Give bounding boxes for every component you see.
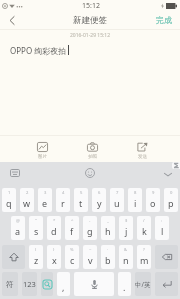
staticText: i (134, 197, 137, 209)
staticText: r (61, 197, 65, 209)
staticText: 符 (6, 280, 14, 289)
staticText: p (168, 197, 174, 209)
staticText: % (70, 247, 74, 253)
staticText: 2016-01-29 15:12 (0, 32, 180, 39)
staticText: / (143, 218, 145, 224)
staticText: 15:12 (82, 1, 100, 11)
button[interactable]: 2 (20, 188, 34, 212)
button[interactable]: 中/英 (135, 272, 151, 296)
staticText: t (79, 197, 83, 209)
button[interactable]: 5 (74, 188, 88, 212)
staticText: y (97, 197, 102, 209)
button[interactable]: % (65, 245, 79, 269)
button[interactable]: Hide keyboard (161, 167, 175, 181)
staticText: - (89, 218, 91, 224)
staticText: 5 (80, 190, 83, 196)
staticText: a (15, 225, 21, 237)
staticText: g (87, 225, 93, 237)
staticText: 9 (152, 190, 155, 196)
button[interactable]: - (83, 216, 97, 240)
staticText: * (53, 218, 56, 224)
button[interactable]: 9 (146, 188, 160, 212)
staticText: 1 (8, 190, 11, 196)
staticText: : (161, 218, 163, 224)
button[interactable]: 发送 (117, 138, 167, 160)
staticText: ) (53, 247, 55, 253)
button[interactable]: @ (11, 216, 25, 240)
button[interactable]: ~ (83, 245, 97, 269)
button[interactable]: ^ (65, 216, 79, 240)
button[interactable]: · (101, 245, 115, 269)
staticText: l (161, 225, 164, 237)
button[interactable]: 1 (2, 188, 16, 212)
button[interactable]: " (29, 216, 43, 240)
staticText: m (140, 254, 149, 266)
button[interactable]: Shift (2, 245, 25, 269)
button[interactable]: Input methods (8, 166, 22, 180)
button[interactable]: 3 (38, 188, 52, 212)
staticText: 6 (98, 190, 101, 196)
staticText: n (123, 254, 129, 266)
button[interactable]: Input method logo (41, 272, 53, 296)
staticText: z (34, 254, 39, 266)
staticText: 2 (26, 190, 29, 196)
button[interactable]: 6 (92, 188, 106, 212)
staticText: · (107, 247, 109, 253)
staticText: b (105, 254, 111, 266)
button[interactable]: $ (119, 216, 133, 240)
staticText: u (114, 197, 120, 209)
staticText: " (35, 218, 37, 224)
staticText: ? (143, 247, 145, 253)
button[interactable]: 符 (2, 272, 18, 296)
staticText: 发送 (138, 154, 147, 160)
staticText: s (34, 225, 39, 237)
staticText: 4 (62, 190, 65, 196)
staticText: k (142, 225, 147, 237)
button[interactable]: _ (101, 216, 115, 240)
button[interactable]: 完成 (156, 11, 172, 29)
button[interactable]: * (47, 216, 61, 240)
button[interactable]: . (118, 272, 131, 296)
button[interactable]: Back (0, 11, 24, 29)
staticText: x (52, 254, 57, 266)
button[interactable]: , (57, 272, 70, 296)
staticText: & (124, 247, 128, 253)
button[interactable]: 图片 (17, 138, 67, 160)
staticText: 3 (44, 190, 47, 196)
staticText: , (62, 281, 65, 293)
staticText: 7 (116, 190, 119, 196)
staticText: c (70, 254, 75, 266)
button[interactable]: 7 (110, 188, 124, 212)
staticText: _ (107, 218, 109, 224)
staticText: f (70, 225, 74, 237)
button[interactable]: Emoji (83, 166, 97, 180)
staticText: d (51, 225, 57, 237)
button[interactable]: ? (137, 245, 151, 269)
staticText: 完成 (156, 15, 172, 25)
button[interactable]: Backspace (155, 245, 178, 269)
staticText: ^ (71, 218, 74, 224)
button[interactable]: / (137, 216, 151, 240)
staticText: 123 (23, 279, 36, 289)
staticText: OPPO 绚彩夜拍 (10, 45, 67, 56)
button[interactable]: : (155, 216, 169, 240)
staticText: 新建便签 (73, 15, 107, 26)
staticText: ~ (89, 247, 92, 253)
button[interactable]: 4 (56, 188, 70, 212)
button[interactable]: ( (29, 245, 43, 269)
button[interactable]: & (119, 245, 133, 269)
staticText: . (123, 281, 126, 293)
staticText: q (6, 197, 12, 209)
button[interactable]: 拍照 (67, 138, 117, 160)
button[interactable]: 0 (164, 188, 178, 212)
button[interactable]: Enter (155, 272, 178, 296)
staticText: o (150, 197, 156, 209)
button[interactable]: 123 (22, 272, 37, 296)
button[interactable]: 8 (128, 188, 142, 212)
staticText: e (42, 197, 48, 209)
staticText: ( (35, 247, 37, 253)
staticText: 图片 (38, 154, 47, 160)
staticText: 8 (134, 190, 137, 196)
button[interactable]: Space / voice input (74, 272, 114, 296)
button[interactable]: ) (47, 245, 61, 269)
